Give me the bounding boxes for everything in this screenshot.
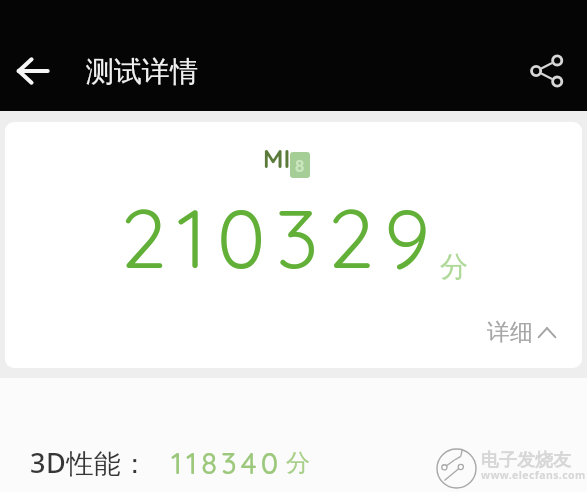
staticText: 电子发烧友 bbox=[481, 449, 571, 472]
staticText: 分 bbox=[440, 249, 468, 284]
staticText: MI bbox=[263, 143, 291, 174]
button[interactable]: Share bbox=[521, 45, 573, 97]
staticText: 3D性能： bbox=[30, 444, 149, 481]
staticText: 118340 bbox=[171, 445, 283, 481]
button[interactable]: Back bbox=[4, 44, 60, 98]
button[interactable]: 详细 bbox=[487, 318, 556, 347]
staticText: 分 bbox=[286, 448, 310, 478]
staticText: www.elecfans.com bbox=[481, 468, 586, 482]
button[interactable]: MI bbox=[5, 122, 582, 368]
staticText: 210329 bbox=[121, 186, 440, 289]
staticText: 8 bbox=[295, 155, 305, 176]
staticText: 测试详情 bbox=[86, 54, 198, 89]
staticText: 详细 bbox=[487, 318, 533, 347]
